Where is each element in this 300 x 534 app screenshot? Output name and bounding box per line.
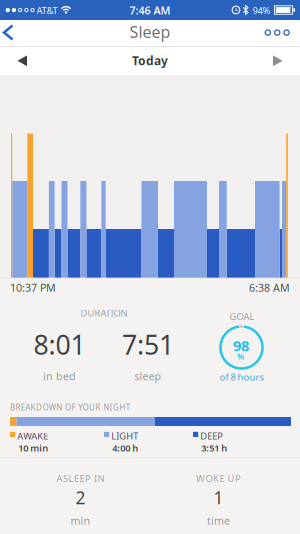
button[interactable]	[270, 53, 286, 69]
staticText: AWAKE	[17, 430, 48, 442]
staticText: 7:46 AM	[129, 3, 170, 17]
staticText: Today	[132, 53, 168, 69]
staticText: %	[237, 351, 244, 362]
staticText: BREAKDOWN OF YOUR NIGHT	[10, 402, 130, 413]
staticText: DURATION	[80, 307, 127, 319]
staticText: 98	[233, 336, 249, 355]
staticText: LIGHT	[111, 430, 138, 442]
staticText: 10:37 PM	[10, 280, 56, 295]
staticText: DEEP	[200, 430, 223, 442]
button[interactable]	[14, 53, 30, 69]
staticText: ASLEEP IN	[56, 472, 104, 485]
staticText: GOAL	[229, 310, 254, 323]
staticText: 10 min	[18, 442, 48, 454]
staticText: in bed	[43, 369, 76, 383]
button[interactable]: Today	[126, 49, 174, 73]
staticText: 3:51 h	[201, 442, 227, 454]
staticText: 6:38 AM	[249, 280, 290, 295]
staticText: Sleep	[129, 21, 170, 42]
staticText: of 8 hours	[219, 371, 263, 383]
staticText: 2	[75, 486, 85, 509]
staticText: sleep	[134, 369, 161, 383]
staticText: 94%	[252, 4, 270, 16]
staticText: WOKE UP	[196, 472, 241, 485]
staticText: min	[70, 513, 90, 528]
staticText: 4:00 h	[112, 442, 138, 454]
staticText: 1	[213, 486, 223, 509]
staticText: 8:01	[33, 327, 85, 362]
button[interactable]	[262, 25, 294, 41]
staticText: 7:51	[122, 327, 174, 362]
staticText: AT&T	[36, 4, 57, 16]
staticText: time	[207, 513, 230, 528]
button[interactable]	[0, 20, 24, 44]
